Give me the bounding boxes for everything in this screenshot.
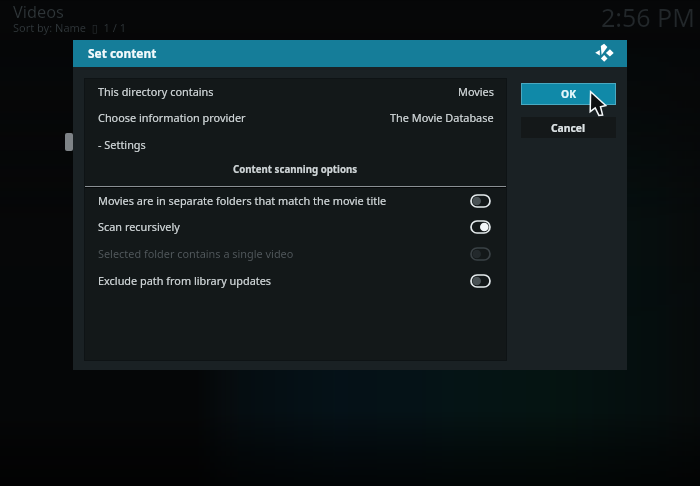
staticText: Sort by: Name ▯ 1 / 1 — [13, 20, 126, 35]
staticText: OK — [561, 87, 576, 101]
button[interactable]: Scan recursively — [84, 213, 507, 240]
staticText: Set content — [88, 45, 157, 61]
staticText: - Settings — [98, 137, 146, 152]
staticText: 2:56 PM — [601, 0, 695, 34]
button[interactable]: Movies are in separate folders that matc… — [84, 187, 507, 214]
button[interactable]: Exclude path from library updates — [84, 267, 507, 294]
button[interactable]: OK — [521, 83, 616, 105]
staticText: Cancel — [551, 121, 586, 135]
button[interactable]: - Settings — [84, 131, 507, 157]
staticText: Content scanning options — [233, 163, 358, 176]
staticText: Videos — [13, 1, 64, 23]
staticText: This directory contains — [98, 84, 214, 99]
button[interactable]: Selected folder contains a single video — [84, 240, 507, 267]
button[interactable]: This directory contains — [84, 78, 507, 104]
staticText: Exclude path from library updates — [98, 273, 272, 288]
staticText: Movies are in separate folders that matc… — [98, 193, 387, 208]
staticText: The Movie Database — [390, 110, 494, 125]
staticText: Choose information provider — [98, 110, 246, 125]
staticText: Scan recursively — [98, 219, 180, 234]
other: Kodi — [595, 43, 614, 64]
staticText: Movies — [458, 84, 494, 99]
staticText: Selected folder contains a single video — [98, 246, 294, 261]
button[interactable]: Choose information provider — [84, 104, 507, 130]
button[interactable]: Cancel — [521, 117, 616, 138]
